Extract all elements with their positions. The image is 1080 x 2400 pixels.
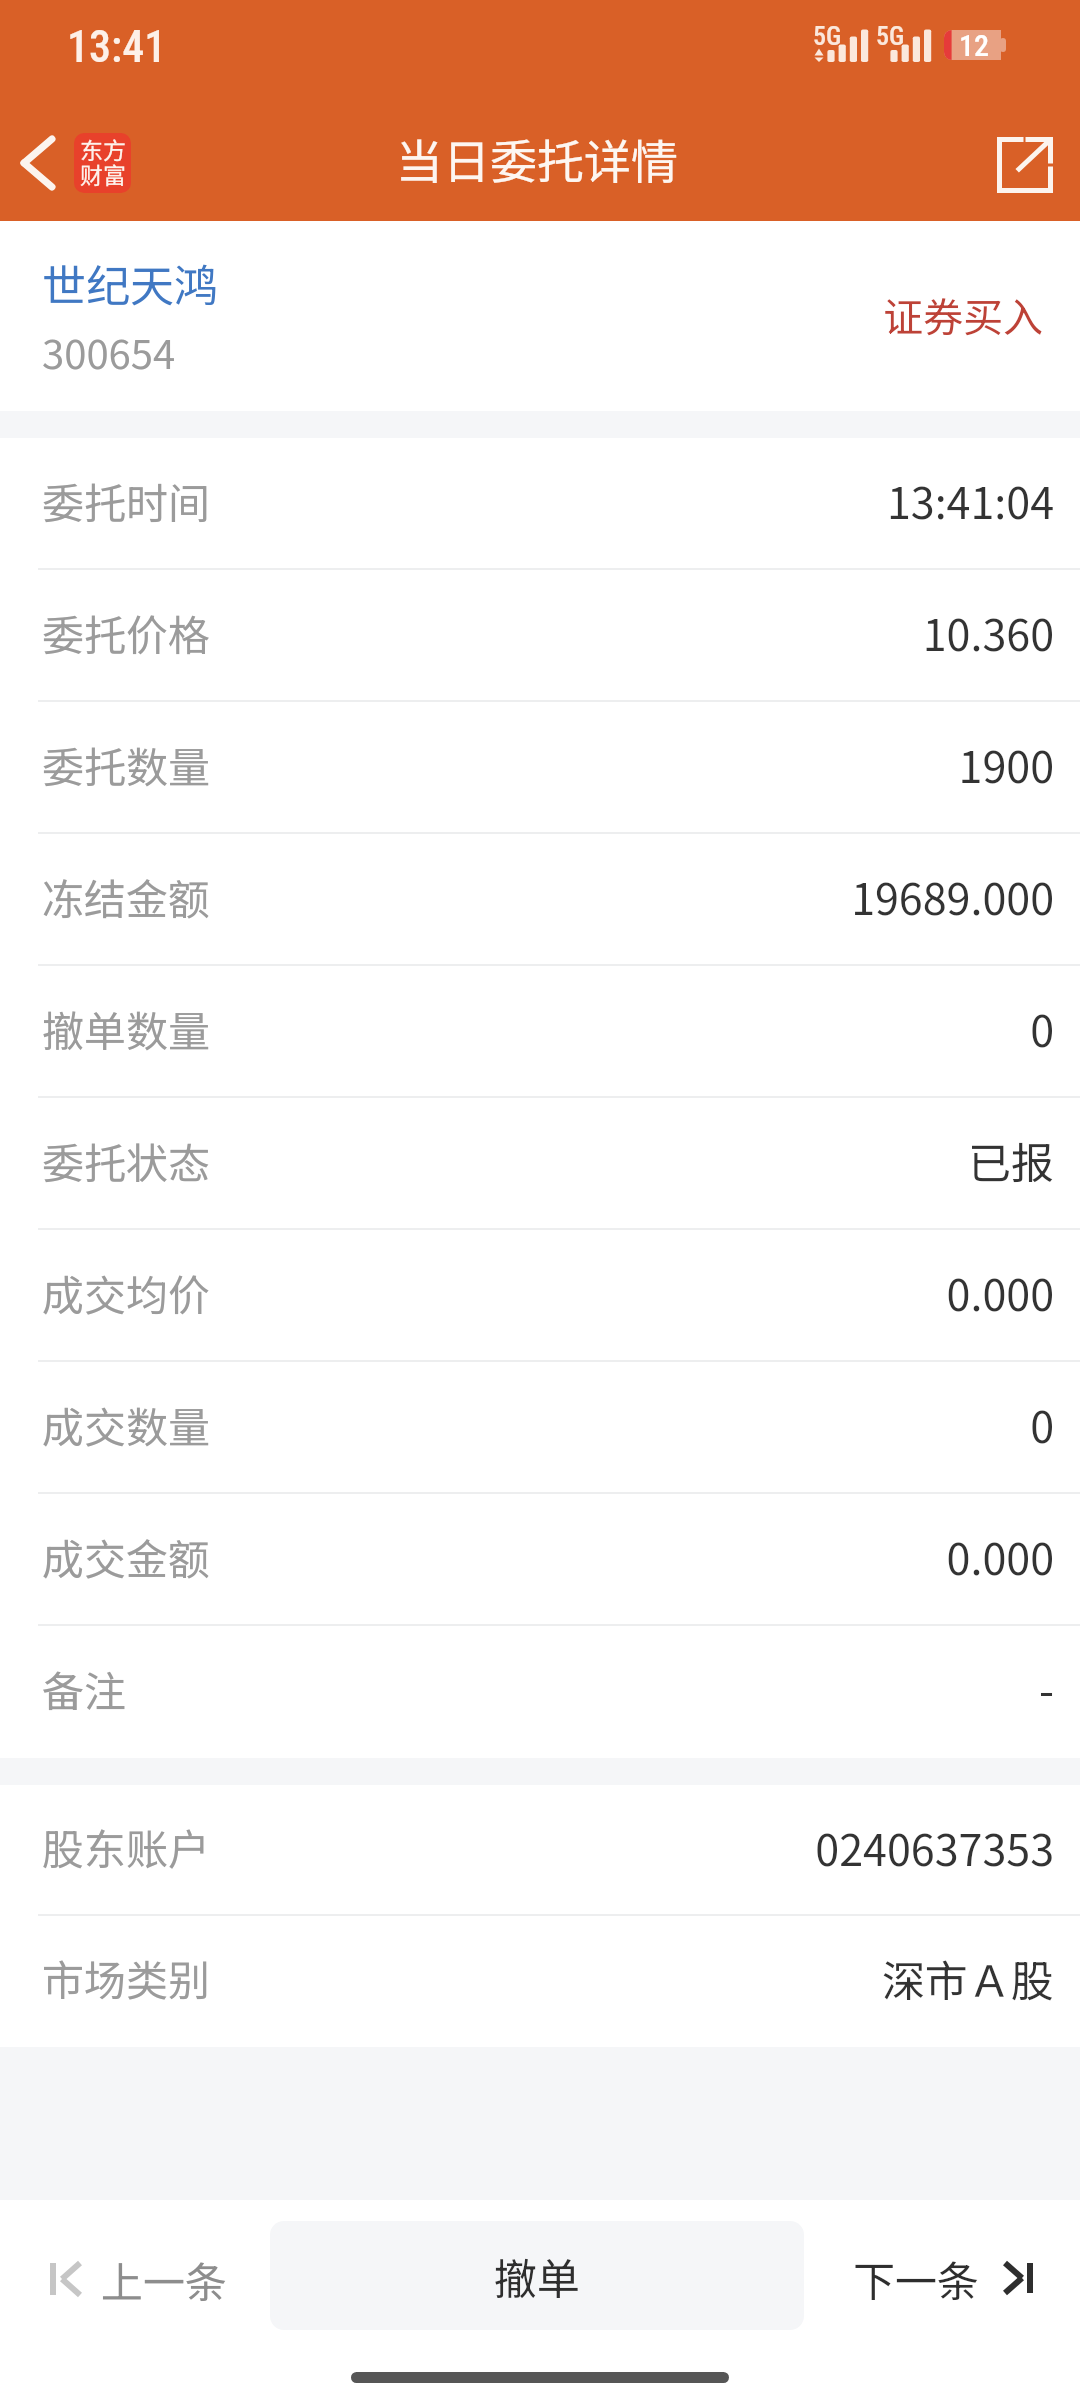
staticText: 委托状态 — [42, 1130, 211, 1191]
staticText: 东方 — [80, 133, 126, 165]
button[interactable]: East Money logo — [74, 133, 131, 193]
button[interactable]: 撤单数量 — [0, 966, 1080, 1098]
staticText: 0.000 — [946, 1261, 1054, 1323]
staticText: 10.360 — [922, 601, 1054, 663]
button[interactable]: 上一条 — [50, 2229, 228, 2329]
button[interactable]: 撤单 — [270, 2221, 804, 2330]
staticText: 5G — [876, 21, 905, 51]
staticText: 财富 — [80, 157, 126, 190]
button[interactable]: Back — [0, 100, 74, 221]
staticText: 300654 — [42, 323, 176, 381]
staticText: 当日委托详情 — [396, 124, 678, 192]
staticText: 下一条 — [853, 2248, 980, 2309]
staticText: 0240637353 — [815, 1816, 1054, 1878]
button[interactable]: 成交数量 — [0, 1362, 1080, 1494]
staticText: 0 — [1030, 1393, 1054, 1455]
staticText: 备注 — [42, 1658, 127, 1719]
button[interactable]: Share — [985, 125, 1065, 205]
staticText: 证券买入 — [883, 286, 1043, 344]
button[interactable]: 委托价格 — [0, 570, 1080, 702]
staticText: 成交数量 — [42, 1394, 211, 1455]
button[interactable]: 下一条 — [853, 2228, 1033, 2328]
staticText: 13:41 — [67, 21, 167, 73]
staticText: 0.000 — [946, 1525, 1054, 1587]
button[interactable]: 委托状态 — [0, 1098, 1080, 1230]
staticText: 已报 — [968, 1129, 1054, 1191]
staticText: 世纪天鸿 — [42, 251, 218, 315]
staticText: 市场类别 — [42, 1947, 211, 2008]
button[interactable]: 股东账户 — [0, 1785, 1080, 1916]
staticText: 深市Ａ股 — [882, 1947, 1054, 2009]
staticText: 委托数量 — [42, 734, 211, 795]
staticText: 成交金额 — [42, 1526, 211, 1587]
button[interactable]: 委托数量 — [0, 702, 1080, 834]
staticText: 股东账户 — [42, 1816, 211, 1877]
staticText: 委托价格 — [42, 602, 211, 663]
staticText: 委托时间 — [42, 470, 211, 531]
staticText: 12 — [959, 28, 989, 63]
staticText: 撤单 — [494, 2245, 580, 2307]
button[interactable]: 备注 — [0, 1626, 1080, 1758]
button[interactable]: 成交金额 — [0, 1494, 1080, 1626]
staticText: 冻结金额 — [42, 866, 211, 927]
staticText: - — [1039, 1657, 1054, 1719]
staticText: 13:41:04 — [886, 469, 1054, 531]
staticText: 19689.000 — [851, 865, 1054, 927]
staticText: 0 — [1030, 997, 1054, 1059]
button[interactable]: 市场类别 — [0, 1916, 1080, 2047]
staticText: 1900 — [958, 733, 1054, 795]
staticText: 成交均价 — [42, 1262, 211, 1323]
staticText: 5G — [813, 21, 842, 51]
button[interactable]: 委托时间 — [0, 438, 1080, 570]
staticText: 上一条 — [101, 2249, 228, 2310]
button[interactable]: 成交均价 — [0, 1230, 1080, 1362]
staticText: 撤单数量 — [42, 998, 211, 1059]
button[interactable]: 冻结金额 — [0, 834, 1080, 966]
